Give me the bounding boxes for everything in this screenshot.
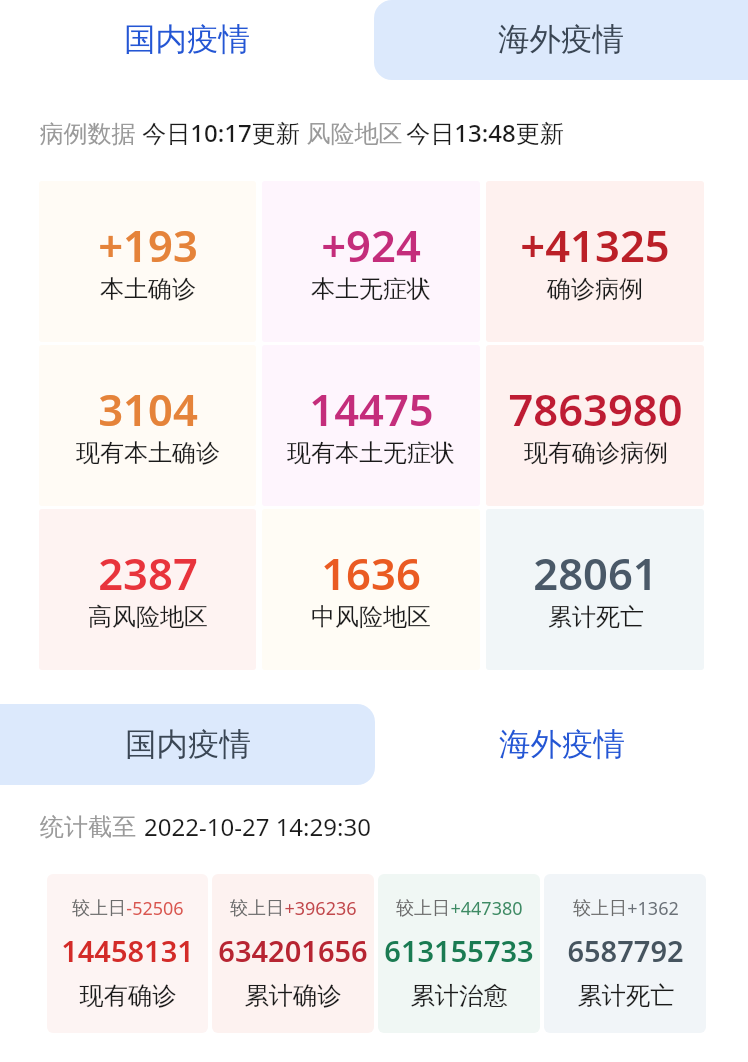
staticText: 确诊病例 — [547, 274, 643, 304]
button[interactable]: 国内疫情 — [0, 704, 375, 785]
staticText: +924 — [321, 215, 421, 274]
staticText: 累计治愈 — [410, 981, 508, 1012]
staticText: 今日13:48更新 — [406, 116, 564, 149]
staticText: 海外疫情 — [498, 20, 624, 60]
staticText: 高风险地区 — [88, 602, 208, 632]
button[interactable]: 较上日 — [544, 874, 706, 1033]
staticText: -52506 — [126, 896, 184, 921]
staticText: 较上日 — [72, 897, 126, 920]
staticText: 28061 — [533, 543, 658, 602]
staticText: 病例数据 — [36, 116, 139, 149]
staticText: 较上日 — [230, 897, 284, 920]
button[interactable]: 较上日 — [47, 874, 208, 1033]
staticText: 2387 — [98, 543, 198, 602]
staticText: 国内疫情 — [125, 725, 251, 765]
staticText: 634201656 — [218, 931, 368, 970]
staticText: 累计确诊 — [244, 981, 342, 1012]
staticText: 风险地区 — [303, 116, 406, 149]
button[interactable]: +924 — [262, 181, 480, 342]
button[interactable]: 14475 — [262, 345, 480, 506]
staticText: 现有本土无症状 — [287, 438, 455, 468]
button[interactable]: 较上日 — [378, 874, 540, 1033]
staticText: 统计截至 — [40, 812, 136, 842]
button[interactable]: +193 — [39, 181, 256, 342]
staticText: 现有确诊 — [79, 981, 177, 1012]
button[interactable]: 海外疫情 — [374, 0, 748, 80]
staticText: 较上日 — [396, 897, 450, 920]
staticText: 现有确诊病例 — [524, 438, 668, 468]
staticText: +447380 — [450, 896, 523, 921]
staticText: 本土无症状 — [311, 274, 431, 304]
staticText: +396236 — [284, 896, 357, 921]
button[interactable]: 国内疫情 — [0, 0, 374, 80]
staticText: 613155733 — [384, 931, 534, 970]
staticText: 6587792 — [567, 931, 684, 970]
staticText: 2022-10-27 14:29:30 — [144, 810, 371, 843]
button[interactable]: 较上日 — [212, 874, 374, 1033]
staticText: 7863980 — [508, 379, 683, 438]
staticText: 较上日 — [573, 897, 627, 920]
staticText: 今日10:17更新 — [139, 116, 303, 149]
button[interactable]: 2387 — [39, 509, 256, 670]
staticText: 3104 — [98, 379, 198, 438]
staticText: +193 — [98, 215, 198, 274]
staticText: 14458131 — [61, 931, 194, 970]
button[interactable]: 3104 — [39, 345, 256, 506]
staticText: 海外疫情 — [499, 725, 625, 765]
staticText: 1636 — [321, 543, 421, 602]
button[interactable]: 7863980 — [486, 345, 704, 506]
button[interactable]: +41325 — [486, 181, 704, 342]
staticText: 累计死亡 — [577, 981, 675, 1012]
staticText: 本土确诊 — [100, 274, 196, 304]
button[interactable]: 海外疫情 — [375, 704, 748, 785]
staticText: 国内疫情 — [124, 20, 250, 60]
button[interactable]: 28061 — [486, 509, 704, 670]
staticText: 14475 — [309, 379, 434, 438]
staticText: +1362 — [627, 896, 679, 921]
staticText: 中风险地区 — [311, 602, 431, 632]
button[interactable]: 1636 — [262, 509, 480, 670]
staticText: 现有本土确诊 — [76, 438, 220, 468]
staticText: 累计死亡 — [548, 602, 644, 632]
staticText: +41325 — [520, 215, 670, 274]
